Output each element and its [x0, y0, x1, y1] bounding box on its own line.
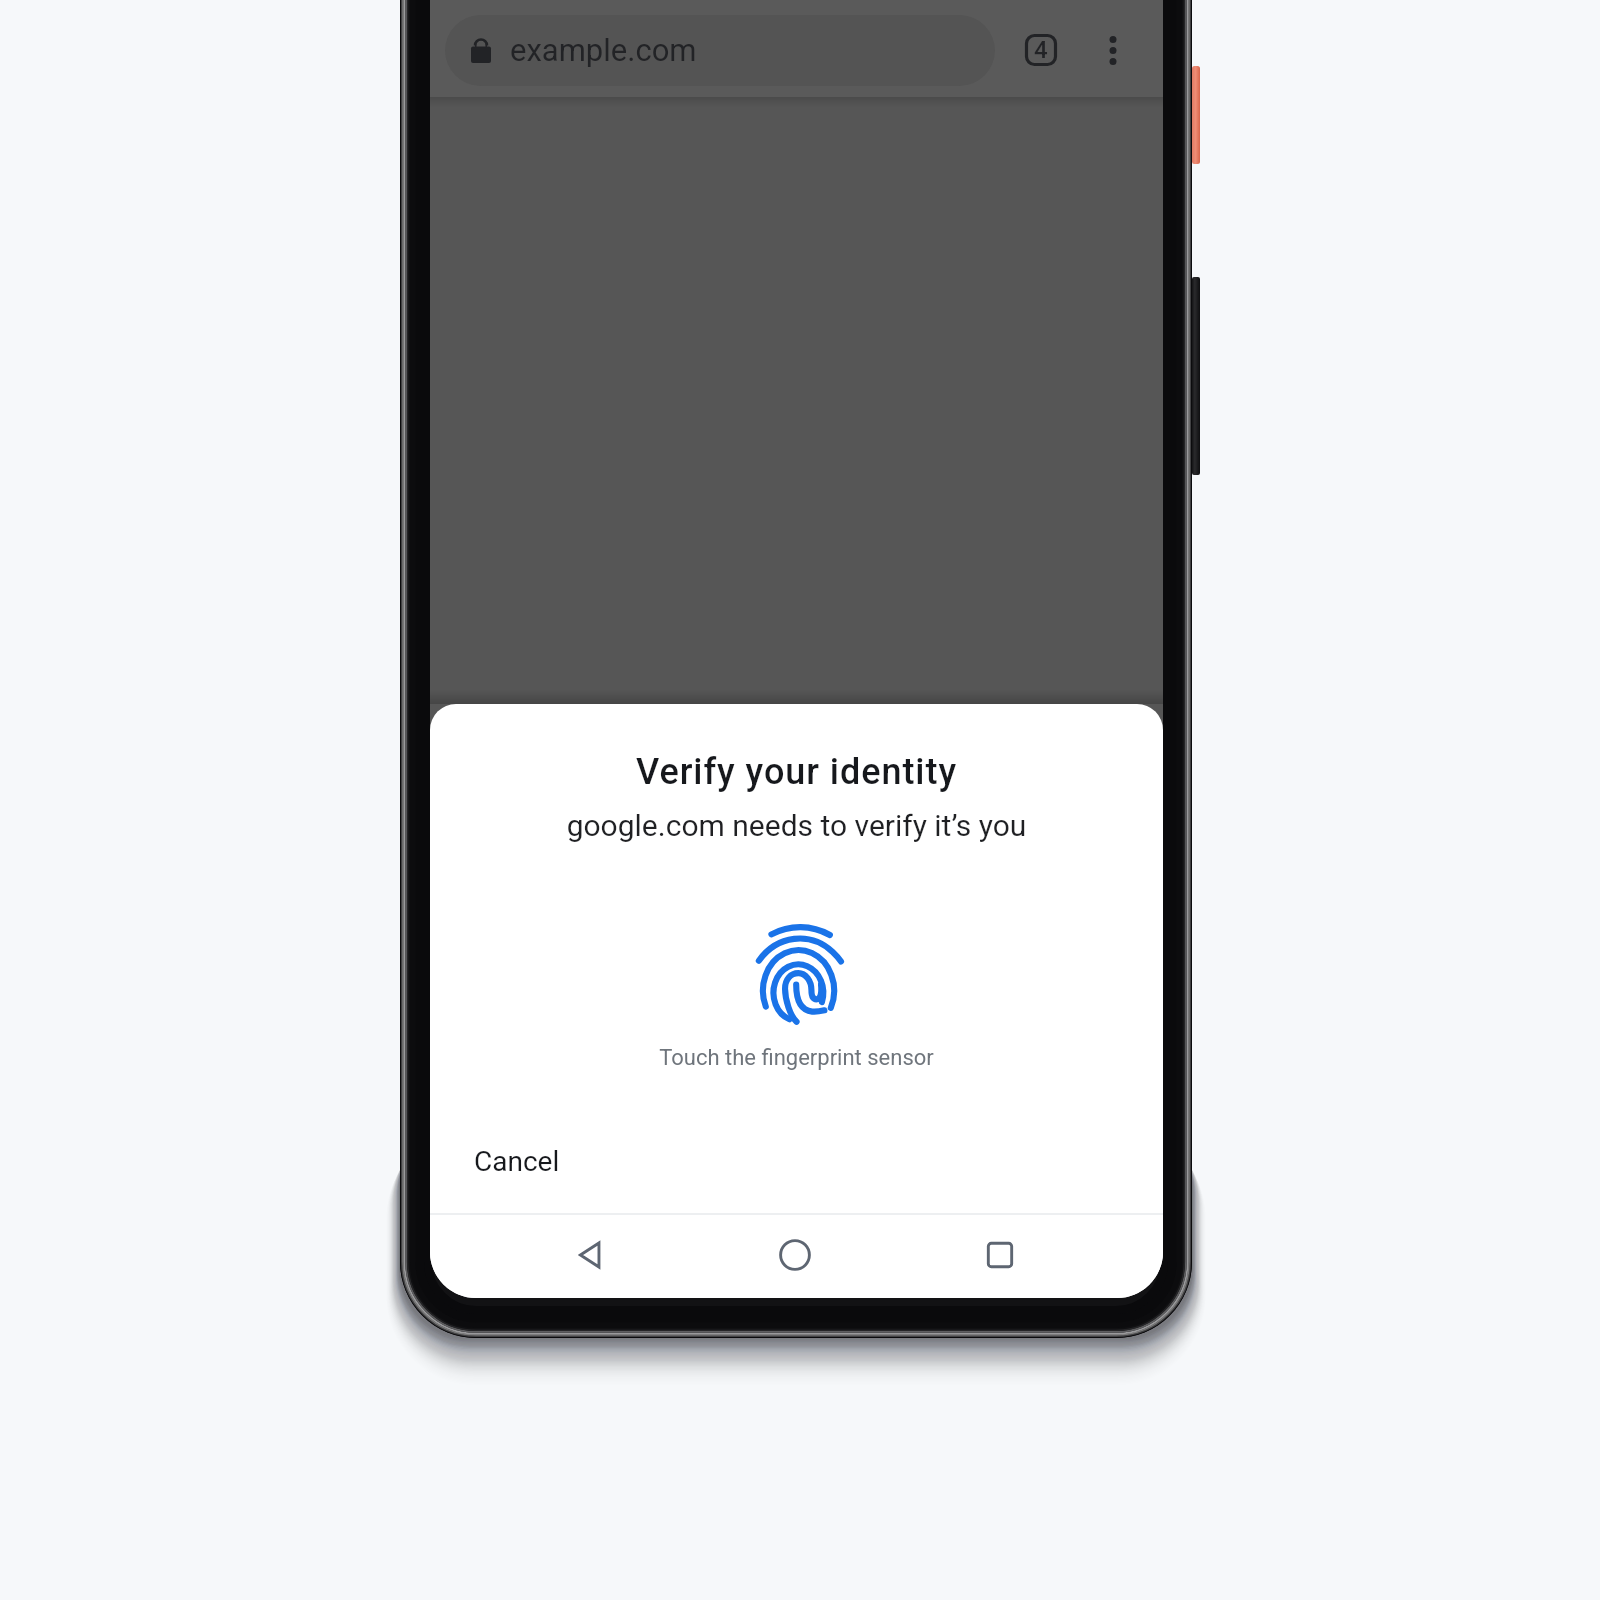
button[interactable]: Home — [759, 1215, 831, 1298]
staticText: 4 — [1034, 36, 1048, 64]
staticText: Touch the fingerprint sensor — [430, 1045, 1163, 1071]
button[interactable]: Recent apps — [964, 1215, 1036, 1298]
staticText: Verify your identity — [430, 751, 1163, 793]
staticText: google.com needs to verify it’s you — [430, 808, 1163, 843]
staticText: Cancel — [474, 1145, 560, 1178]
staticText: example.com — [510, 32, 697, 68]
button[interactable]: Cancel — [452, 1124, 592, 1198]
button[interactable]: More options — [1077, 14, 1149, 86]
button[interactable]: Tabs: 4 open — [1005, 14, 1077, 86]
button[interactable]: example.com — [445, 15, 995, 86]
button[interactable]: Back — [554, 1215, 626, 1298]
